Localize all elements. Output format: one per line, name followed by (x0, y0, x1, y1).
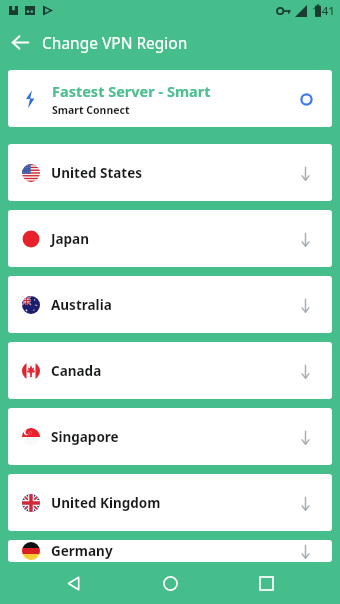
button[interactable]: Recents (244, 562, 288, 604)
button[interactable]: Download United Kingdom (292, 490, 318, 516)
staticText: Japan (51, 230, 292, 248)
staticText: United States (51, 164, 292, 182)
button[interactable]: Download Canada (292, 358, 318, 384)
button[interactable]: United States (8, 144, 332, 201)
staticText: United Kingdom (51, 494, 292, 512)
button[interactable]: Download Germany (292, 540, 318, 562)
button[interactable]: Singapore (8, 408, 332, 465)
button[interactable]: Australia (8, 276, 332, 333)
button[interactable]: Download Singapore (292, 424, 318, 450)
staticText: Smart Connect (52, 103, 130, 117)
staticText: Singapore (51, 428, 292, 446)
staticText: Fastest Server - Smart (52, 81, 211, 101)
button[interactable]: Fastest Server - Smart (8, 70, 332, 127)
staticText: 1:41 (312, 3, 335, 19)
button[interactable]: Canada (8, 342, 332, 399)
button[interactable]: Back (0, 22, 40, 62)
button[interactable]: Download United States (292, 160, 318, 186)
button[interactable]: Select fastest server (294, 87, 318, 111)
button[interactable]: Japan (8, 210, 332, 267)
staticText: Germany (51, 542, 292, 560)
staticText: Australia (51, 296, 292, 314)
button[interactable]: Download Australia (292, 292, 318, 318)
button[interactable]: Home (148, 562, 192, 604)
button[interactable]: United Kingdom (8, 474, 332, 531)
button[interactable]: Download Japan (292, 226, 318, 252)
button[interactable]: Germany (8, 540, 332, 562)
staticText: Canada (51, 362, 292, 380)
button[interactable]: Back (52, 562, 96, 604)
staticText: Change VPN Region (42, 32, 188, 53)
